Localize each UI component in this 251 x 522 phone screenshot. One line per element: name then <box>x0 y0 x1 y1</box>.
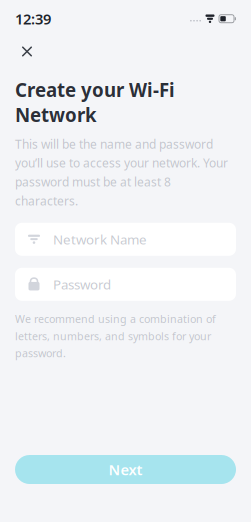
staticText: Next <box>108 460 142 479</box>
staticText: Password <box>53 275 111 293</box>
button[interactable]: Password <box>15 268 236 301</box>
button[interactable]: Network Name <box>15 223 236 256</box>
staticText: 12:39 <box>15 9 51 28</box>
staticText: Create your Wi-Fi Network <box>15 77 175 127</box>
staticText: Network Name <box>53 230 147 248</box>
staticText: We recommend using a combination of lett… <box>15 312 216 360</box>
button[interactable]: Next <box>15 455 236 484</box>
button[interactable]: Close <box>14 38 40 64</box>
staticText: This will be the name and password you’l… <box>15 136 228 209</box>
